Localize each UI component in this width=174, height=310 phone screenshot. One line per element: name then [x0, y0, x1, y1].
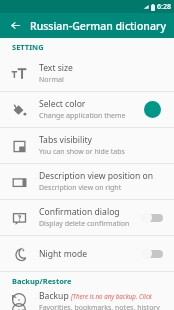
button[interactable]: Night mode	[0, 236, 174, 271]
staticText: Text size	[39, 62, 73, 74]
staticText: Confirmation dialog	[39, 206, 120, 218]
button[interactable]: Back	[0, 13, 30, 38]
staticText: Select color	[39, 98, 86, 110]
button[interactable]: Backup	[0, 290, 174, 310]
staticText: SETTING	[12, 42, 44, 52]
staticText: [There is no any backup. Click create ba…	[71, 292, 165, 300]
button[interactable]: Confirmation dialog	[0, 200, 174, 235]
staticText: You can show or hide tabs	[39, 147, 125, 157]
button[interactable]: Select color	[0, 92, 174, 127]
staticText: Change application theme color	[39, 111, 135, 121]
button[interactable]: Text size	[0, 56, 174, 91]
staticText: Russian-German dictionary	[30, 19, 166, 33]
staticText: Night mode	[39, 248, 88, 260]
button[interactable]: Description view position on landscape m…	[0, 164, 174, 199]
staticText: Backup	[39, 290, 69, 302]
staticText: Display delete confirmation dialog	[39, 219, 135, 229]
staticText: Normal	[39, 75, 64, 85]
staticText: Description view position on landscape m…	[39, 170, 165, 182]
staticText: Favorities, bookmarks, notes, history li…	[39, 303, 165, 310]
staticText: 6:28	[157, 2, 171, 12]
staticText: Backup/Restore	[12, 276, 72, 286]
staticText: Description view on right	[39, 183, 122, 193]
staticText: Tabs visibility	[39, 134, 92, 146]
button[interactable]: Tabs visibility	[0, 128, 174, 163]
